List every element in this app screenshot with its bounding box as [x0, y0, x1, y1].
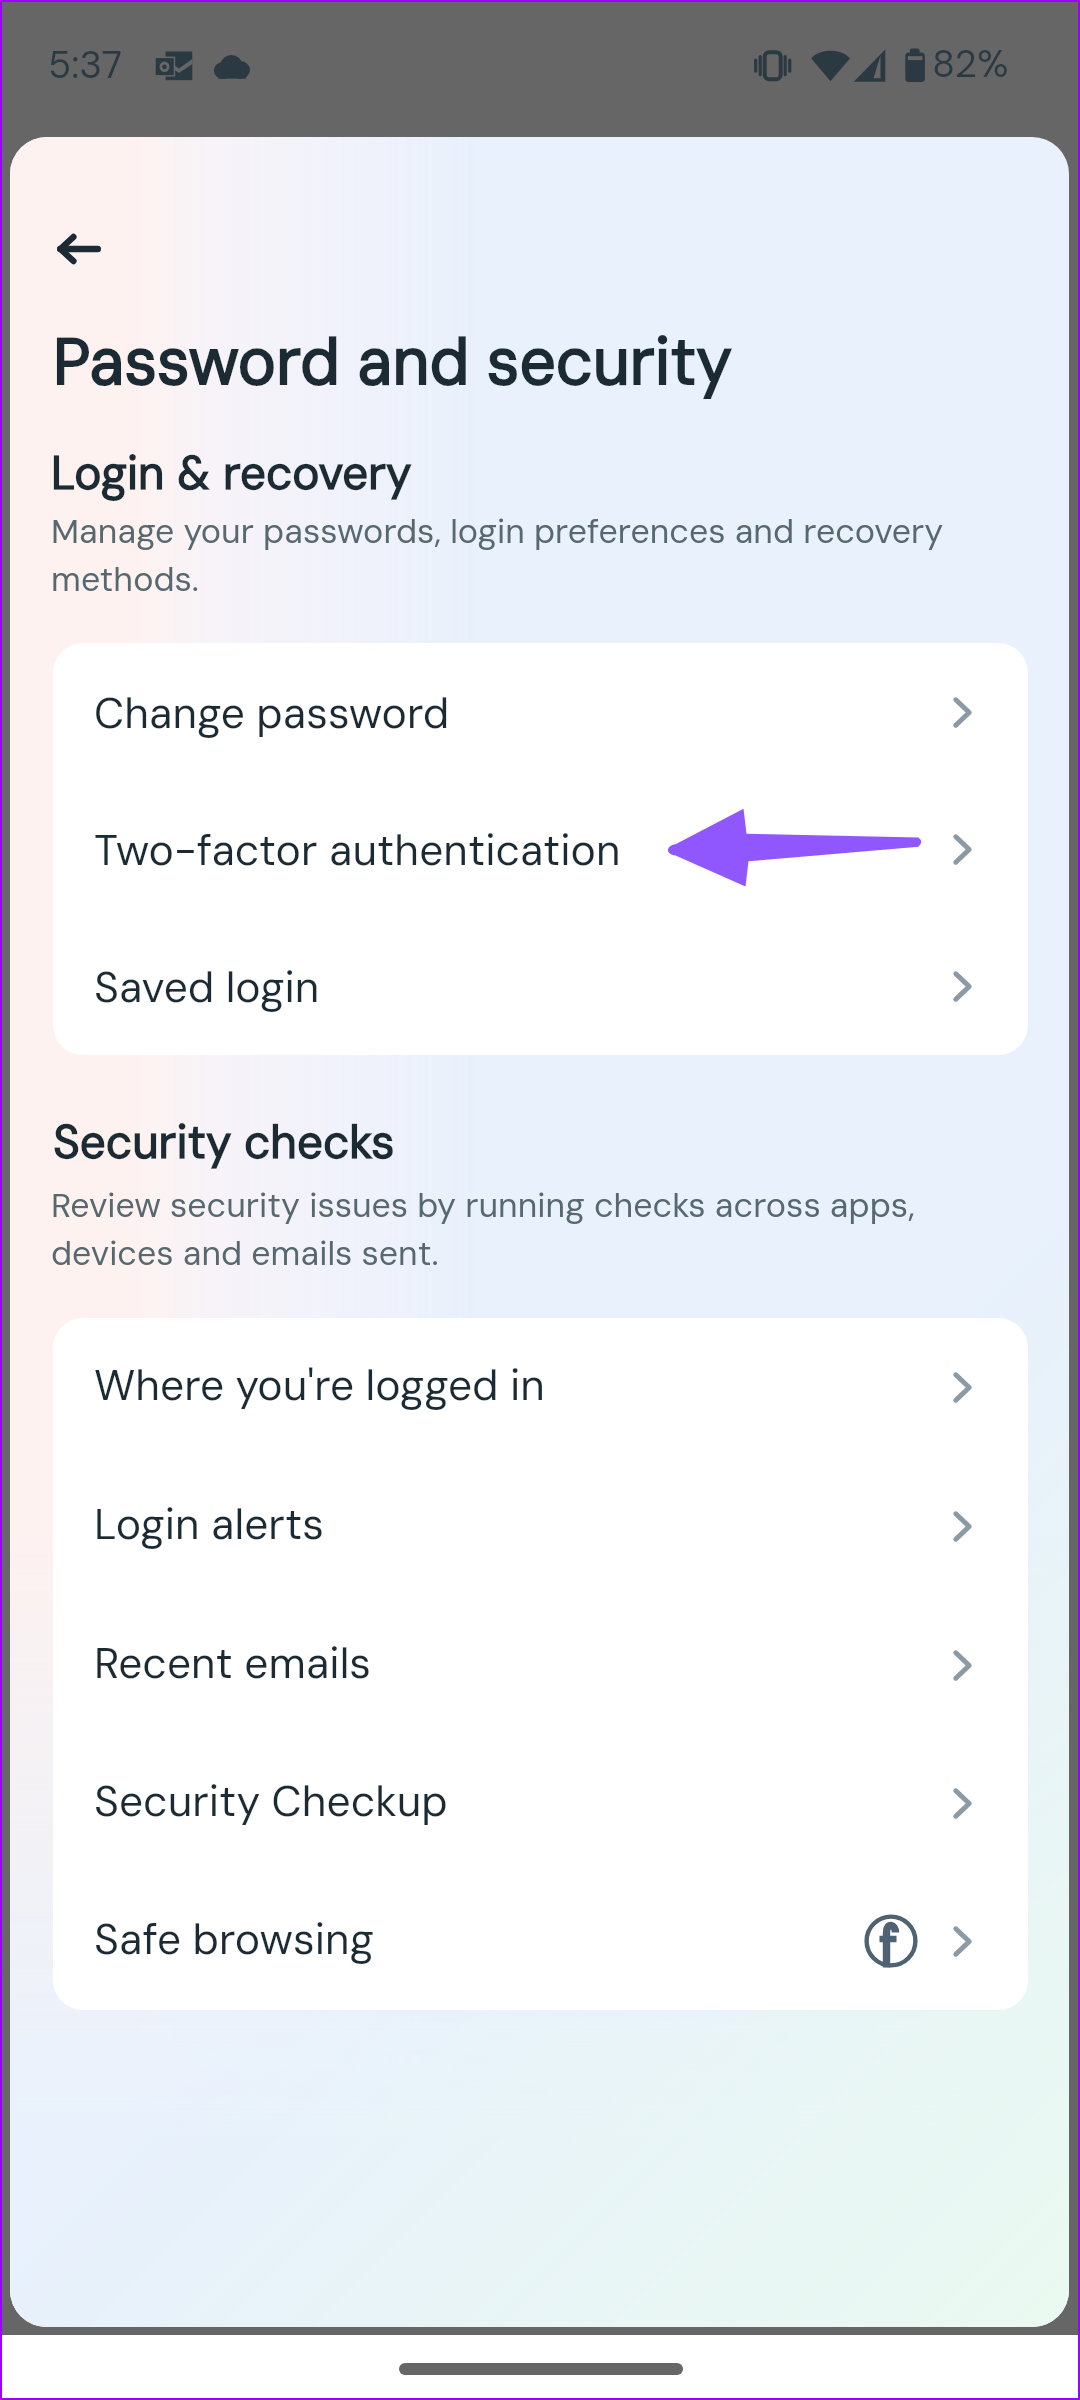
- staticText: Security checks: [53, 1113, 395, 1173]
- staticText: 5:37: [48, 40, 123, 90]
- button[interactable]: Safe browsing: [53, 1872, 1028, 2010]
- staticText: 82%: [932, 39, 1009, 89]
- button[interactable]: Security Checkup: [53, 1734, 1028, 1872]
- button[interactable]: Recent emails: [53, 1596, 1028, 1734]
- staticText: Safe browsing: [94, 1912, 375, 1967]
- button[interactable]: Where you're logged in: [53, 1318, 1028, 1457]
- button[interactable]: Login alerts: [53, 1457, 1028, 1596]
- staticText: Recent emails: [94, 1636, 371, 1691]
- button[interactable]: Saved login: [53, 918, 1028, 1055]
- button[interactable]: Two-factor authentication: [53, 781, 1028, 918]
- staticText: Two-factor authentication: [94, 823, 621, 878]
- staticText: Change password: [94, 686, 450, 741]
- staticText: Saved login: [94, 960, 320, 1015]
- staticText: Password and security: [53, 320, 733, 404]
- button[interactable]: Change password: [53, 643, 1028, 781]
- staticText: Where you're logged in: [94, 1358, 545, 1413]
- staticText: Login & recovery: [51, 444, 412, 504]
- staticText: Review security issues by running checks…: [51, 1180, 951, 1276]
- staticText: Security Checkup: [94, 1774, 448, 1829]
- staticText: Login alerts: [94, 1497, 324, 1552]
- staticText: Manage your passwords, login preferences…: [51, 506, 981, 602]
- button[interactable]: Back: [39, 209, 119, 289]
